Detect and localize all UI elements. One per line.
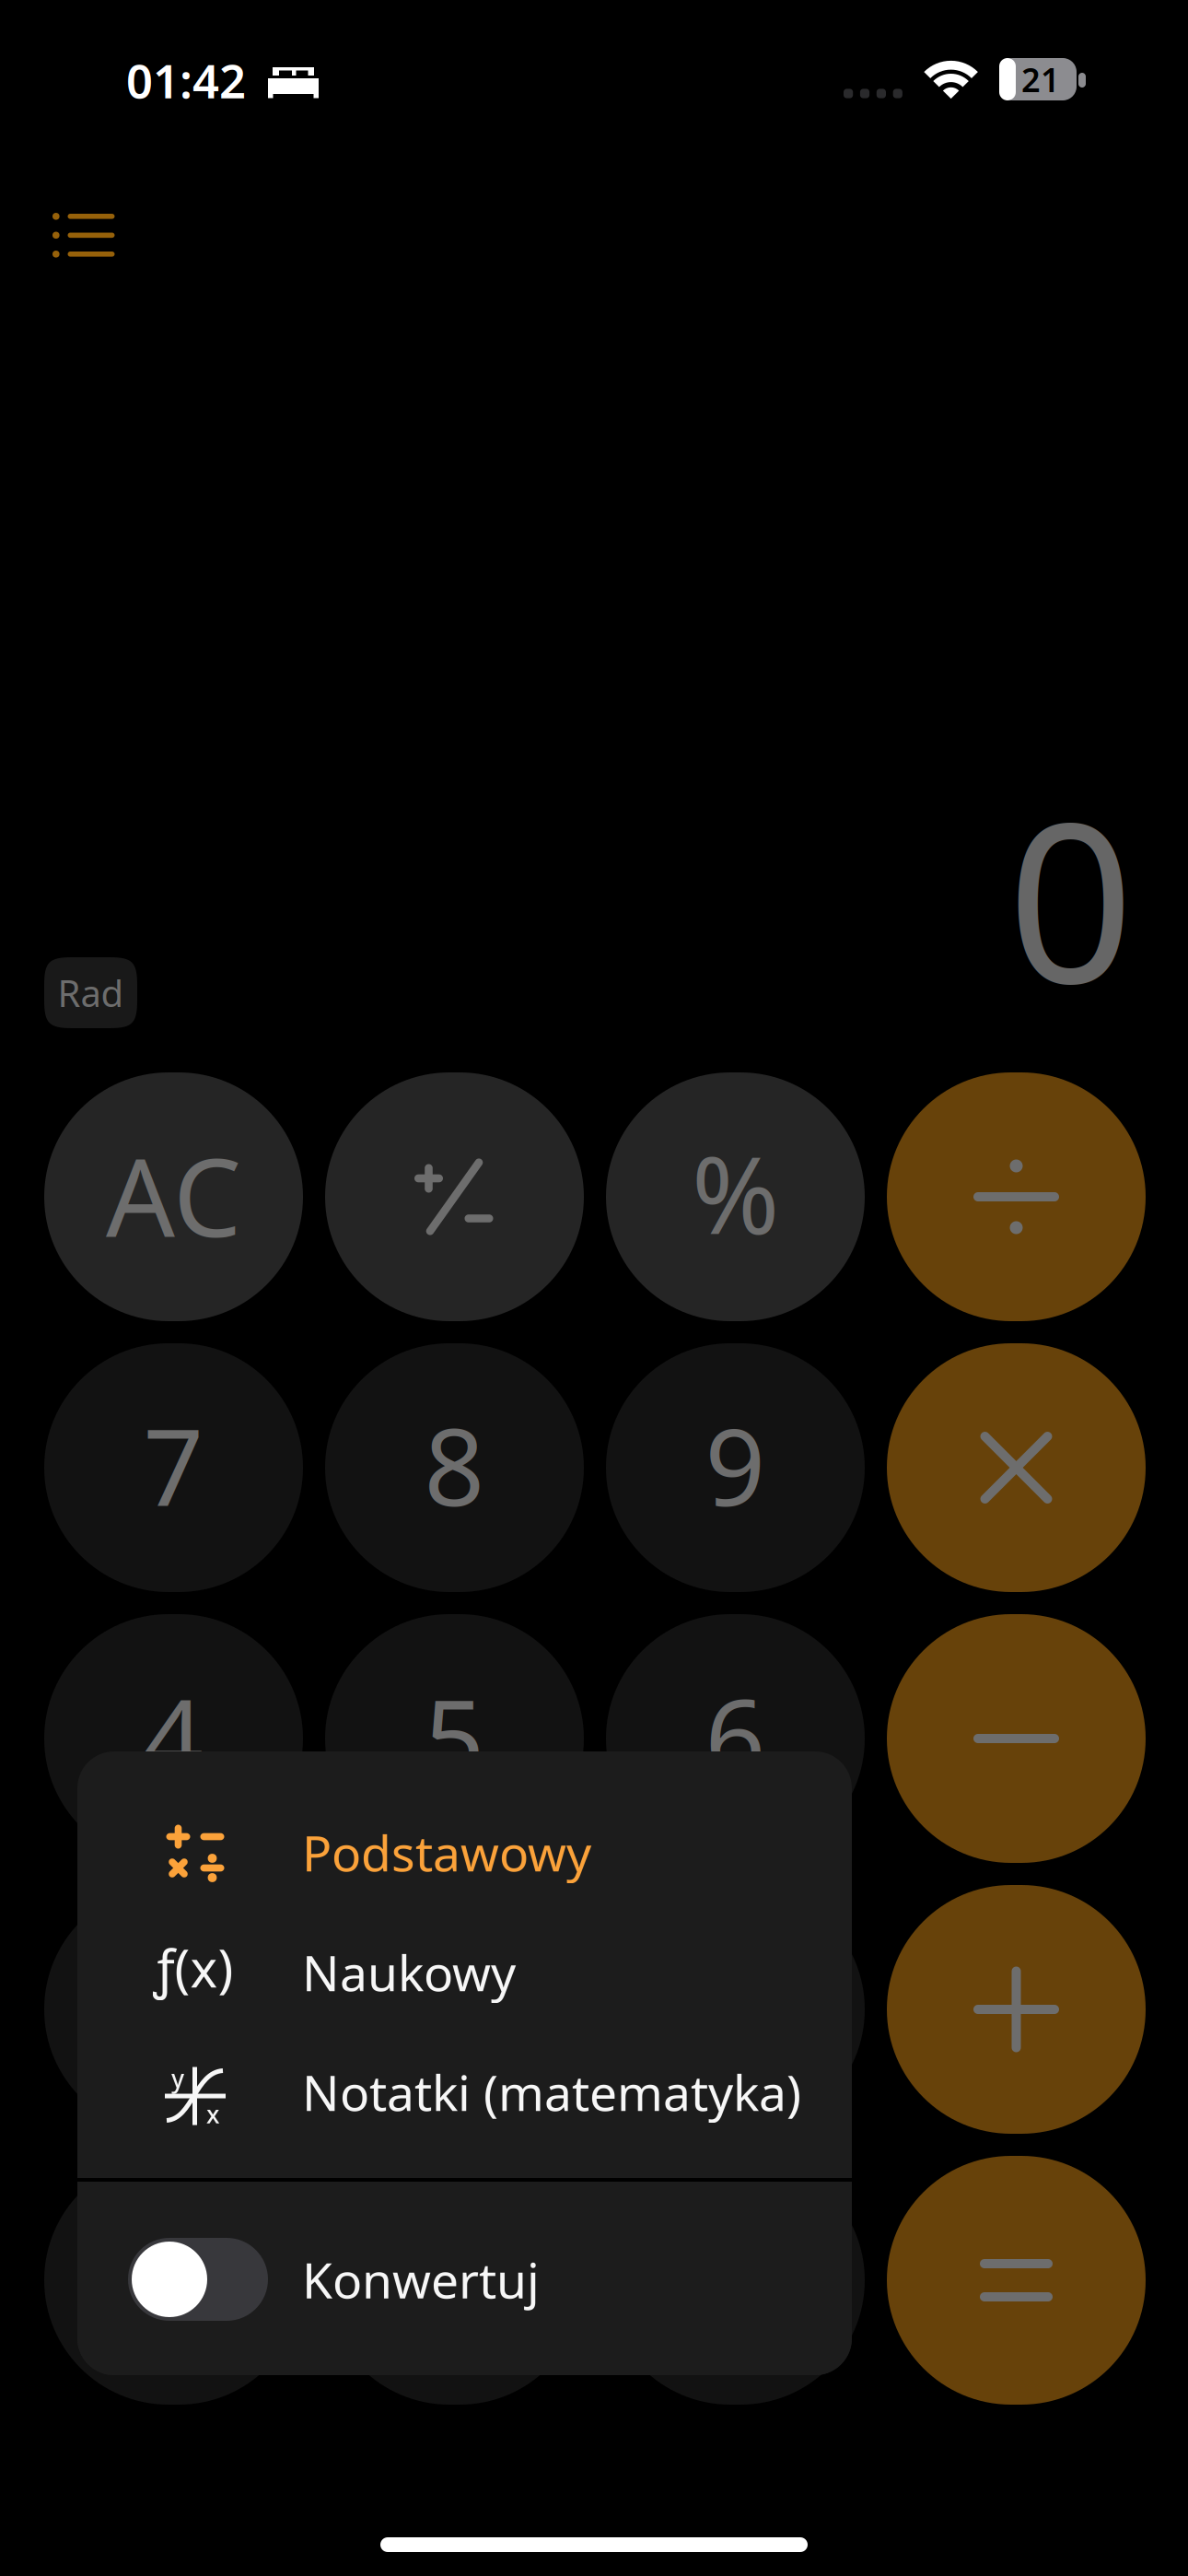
button[interactable]: Podstawowy — [77, 1792, 852, 1912]
staticText: 0 — [1007, 751, 1134, 1044]
staticText: x — [206, 2098, 219, 2130]
staticText: 1 — [143, 1937, 204, 2077]
button[interactable]: Minus — [887, 1614, 1146, 1863]
staticText: 5 — [424, 1666, 485, 1806]
staticText: Podstawowy — [302, 1820, 591, 1885]
button[interactable]: 5 — [325, 1614, 584, 1863]
staticText: 01:42 — [126, 49, 246, 111]
button[interactable]: % — [606, 1072, 865, 1321]
button[interactable]: Plus minus — [325, 1072, 584, 1321]
button[interactable]: Konwertuj — [77, 2184, 852, 2375]
button[interactable]: 1 — [44, 1885, 303, 2134]
staticText: ƒ(x) — [153, 1933, 233, 2002]
button[interactable]: 8 — [325, 1343, 584, 1592]
button[interactable]: 3 — [606, 1885, 865, 2134]
staticText: 2 — [424, 1937, 485, 2077]
staticText: AC — [106, 1123, 241, 1267]
button[interactable]: Calculator history — [29, 190, 139, 282]
button[interactable]: 4 — [44, 1614, 303, 1863]
staticText: Notatki (matematyka) — [302, 2059, 801, 2124]
button[interactable]: Equals — [887, 2156, 1146, 2405]
button[interactable]: Multiply — [887, 1343, 1146, 1592]
staticText: 4 — [143, 1666, 204, 1806]
button[interactable]: , — [325, 2156, 584, 2405]
button[interactable]: ƒ(x) — [77, 1912, 852, 2032]
staticText: 8 — [424, 1395, 485, 1535]
button[interactable]: 2 — [325, 1885, 584, 2134]
staticText: Rad — [58, 968, 124, 1017]
staticText: 7 — [143, 1395, 204, 1535]
button[interactable] — [606, 2156, 865, 2405]
button[interactable]: Divide — [887, 1072, 1146, 1321]
staticText: 21 — [1021, 57, 1060, 101]
staticText: Naukowy — [302, 1939, 516, 2005]
staticText: , — [440, 2190, 469, 2330]
staticText: 6 — [705, 1666, 766, 1806]
staticText: y — [171, 2062, 184, 2094]
button[interactable]: 6 — [606, 1614, 865, 1863]
button[interactable]: 0 — [44, 2156, 303, 2405]
staticText: % — [692, 1123, 779, 1263]
button[interactable]: 7 — [44, 1343, 303, 1592]
button[interactable]: AC — [44, 1072, 303, 1321]
staticText: 3 — [705, 1937, 766, 2077]
button[interactable]: 9 — [606, 1343, 865, 1592]
button[interactable]: y — [77, 2032, 852, 2152]
staticText: Konwertuj — [302, 2247, 540, 2312]
staticText: 9 — [705, 1395, 766, 1535]
button[interactable]: Plus — [887, 1885, 1146, 2134]
staticText: 0 — [143, 2207, 204, 2348]
